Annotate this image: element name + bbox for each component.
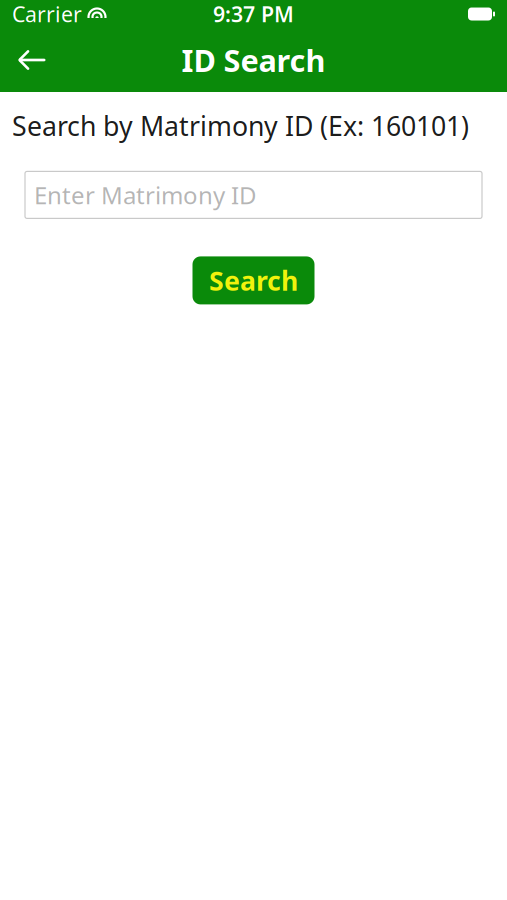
staticText: Carrier <box>12 0 82 28</box>
button[interactable]: Search <box>192 256 314 304</box>
staticText: Search by Matrimony ID (Ex: 160101) <box>12 108 469 143</box>
staticText: Search <box>209 263 298 298</box>
button[interactable]: Back <box>4 32 60 88</box>
staticText: Enter Matrimony ID <box>34 179 257 211</box>
staticText: ID Search <box>181 40 325 80</box>
staticText: 9:37 PM <box>213 0 294 28</box>
button[interactable]: Enter Matrimony ID <box>25 171 482 218</box>
